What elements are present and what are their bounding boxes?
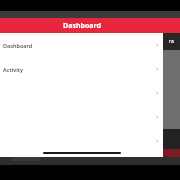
staticText: Dashboard (3, 42, 33, 49)
staticText: Activity (3, 66, 24, 73)
button[interactable]: Dashboard (0, 21, 163, 31)
button[interactable]: Activity (0, 57, 163, 81)
button[interactable]: List item (0, 129, 163, 153)
staticText: Dashboard (63, 21, 101, 31)
button[interactable]: Dashboard (0, 33, 163, 57)
button[interactable]: ra (163, 33, 180, 50)
staticText: ra (169, 38, 174, 45)
